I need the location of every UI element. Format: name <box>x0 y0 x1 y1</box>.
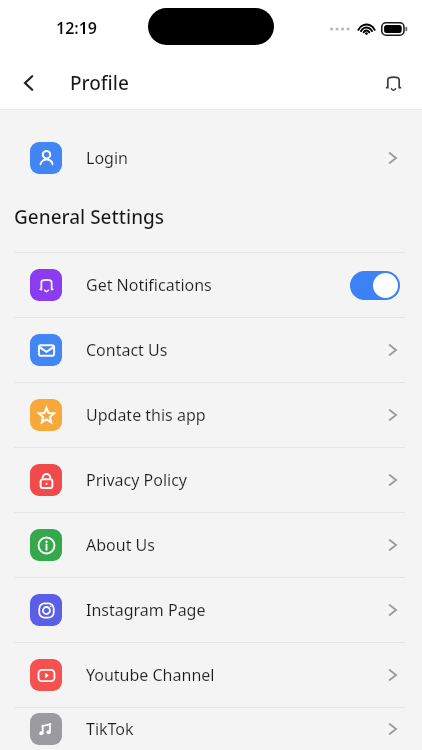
staticText: Login <box>86 147 386 169</box>
staticText: Get Notifications <box>86 274 350 296</box>
button[interactable]: About Us <box>0 513 422 577</box>
staticText: Contact Us <box>86 339 386 361</box>
button[interactable]: Login <box>0 126 422 190</box>
staticText: TikTok <box>86 718 386 740</box>
button[interactable]: Get Notifications toggle <box>350 271 400 300</box>
button[interactable]: Back <box>10 64 48 102</box>
staticText: About Us <box>86 534 386 556</box>
button[interactable]: TikTok <box>0 708 422 750</box>
button[interactable]: Get Notifications <box>0 253 422 317</box>
button[interactable]: Instagram Page <box>0 578 422 642</box>
button[interactable]: Contact Us <box>0 318 422 382</box>
staticText: General Settings <box>14 204 165 230</box>
staticText: Instagram Page <box>86 599 386 621</box>
staticText: Privacy Policy <box>86 469 386 491</box>
button[interactable]: Privacy Policy <box>0 448 422 512</box>
staticText: Profile <box>70 70 129 96</box>
button[interactable]: Notifications <box>374 64 412 102</box>
button[interactable]: Youtube Channel <box>0 643 422 707</box>
staticText: Update this app <box>86 404 386 426</box>
staticText: 12:19 <box>56 17 98 39</box>
staticText: Youtube Channel <box>86 664 386 686</box>
button[interactable]: Update this app <box>0 383 422 447</box>
